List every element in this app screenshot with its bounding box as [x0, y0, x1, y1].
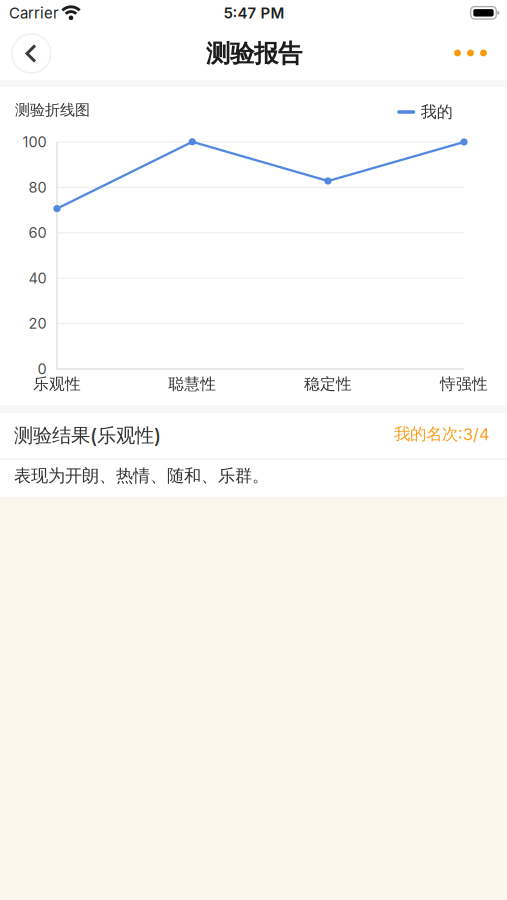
button[interactable]: Back: [12, 34, 51, 73]
staticText: 表现为开朗、热情、随和、乐群。: [14, 465, 269, 487]
staticText: 恃强性: [440, 374, 488, 394]
staticText: 20: [28, 315, 46, 332]
staticText: 我的名次:3/4: [394, 424, 490, 444]
staticText: 测验折线图: [15, 101, 90, 119]
staticText: 聪慧性: [168, 374, 216, 394]
staticText: Carrier: [9, 4, 59, 22]
staticText: 测验报告: [206, 38, 302, 69]
staticText: 0: [37, 360, 46, 378]
staticText: 5:47 PM: [223, 4, 284, 22]
staticText: 我的: [421, 102, 453, 122]
staticText: 40: [28, 269, 46, 287]
staticText: 测验结果(乐观性): [14, 423, 161, 448]
button[interactable]: More: [447, 38, 493, 68]
staticText: 80: [28, 179, 46, 196]
staticText: 60: [28, 224, 46, 241]
staticText: 乐观性: [33, 374, 81, 394]
staticText: 100: [22, 133, 46, 151]
staticText: 稳定性: [304, 374, 352, 394]
